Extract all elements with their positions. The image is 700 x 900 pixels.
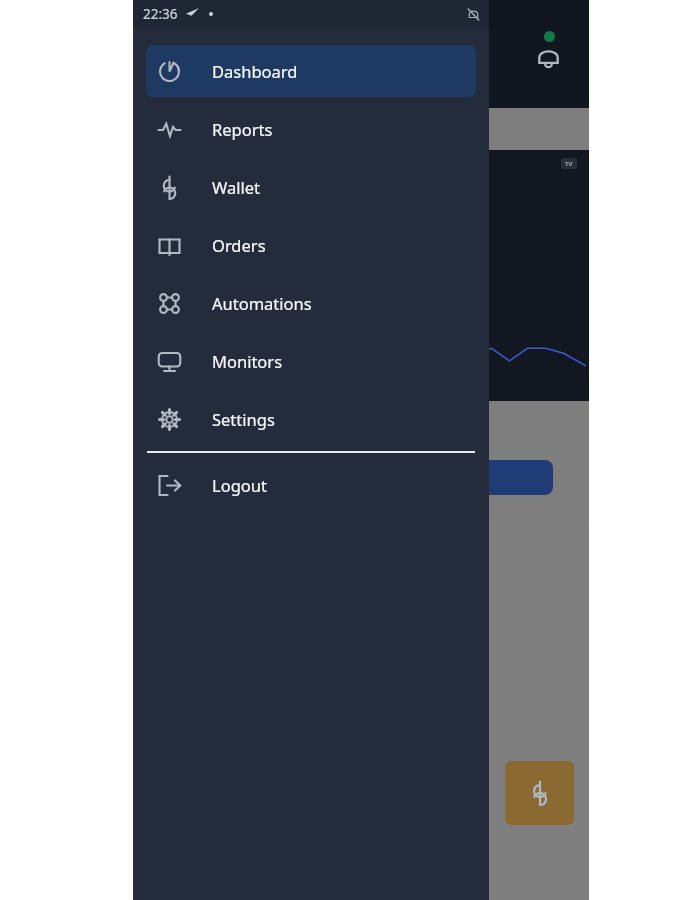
staticText: TV [565, 160, 573, 168]
button[interactable]: Wallet [146, 161, 476, 213]
button[interactable]: Monitors [146, 335, 476, 387]
button[interactable]: Deposit [505, 761, 574, 825]
staticText: Monitors [212, 350, 283, 372]
button[interactable]: Notifications [523, 28, 573, 78]
staticText: Orders [212, 234, 266, 256]
staticText: Settings [212, 408, 275, 430]
button[interactable]: Settings [146, 393, 476, 445]
button[interactable]: Automations [146, 277, 476, 329]
button[interactable]: Dashboard [146, 45, 476, 97]
staticText: Reports [212, 118, 273, 140]
staticText: Wallet [212, 176, 261, 198]
button[interactable]: Buy 1.234 [133, 460, 553, 495]
button[interactable]: Reports [146, 103, 476, 155]
button[interactable]: Logout [146, 459, 476, 511]
staticText: 22:36 [143, 5, 178, 23]
staticText: Dashboard [212, 60, 298, 82]
button[interactable]: Orders [146, 219, 476, 271]
staticText: Logout [212, 474, 267, 496]
staticText: Automations [212, 292, 312, 314]
